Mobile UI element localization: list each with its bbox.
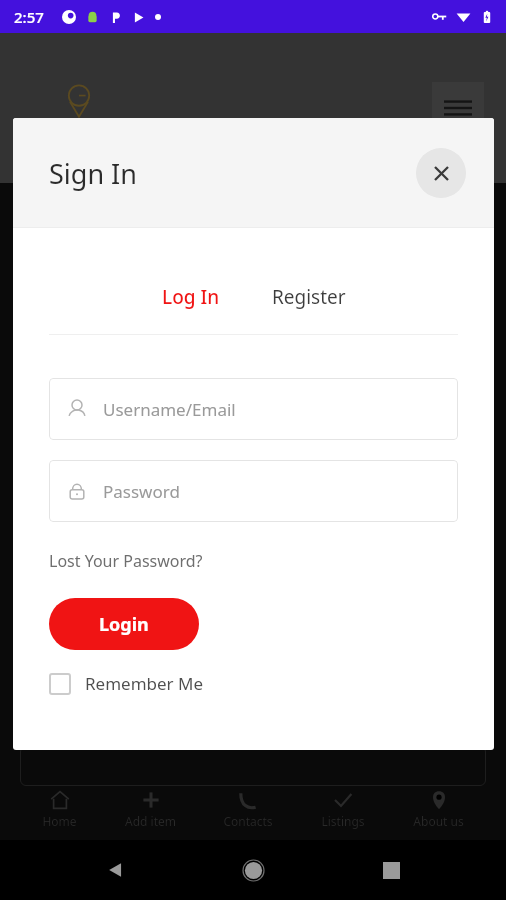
staticText: Lost Your Password? bbox=[49, 550, 203, 572]
staticText: Password bbox=[103, 480, 180, 503]
button[interactable]: Register bbox=[264, 280, 354, 314]
button[interactable]: Home bbox=[36, 786, 83, 833]
button[interactable]: Home bbox=[231, 848, 275, 892]
staticText: Register bbox=[272, 284, 346, 310]
button[interactable]: Add item bbox=[119, 786, 182, 833]
staticText: Remember Me bbox=[85, 672, 204, 695]
staticText: Log In bbox=[162, 284, 220, 310]
staticText: Listings bbox=[321, 813, 365, 829]
staticText: Login bbox=[99, 612, 149, 637]
staticText: Contacts bbox=[223, 813, 273, 829]
button[interactable]: Username/Email bbox=[49, 378, 458, 440]
button[interactable]: Log In bbox=[154, 280, 228, 314]
button[interactable]: Recent apps bbox=[369, 848, 413, 892]
button[interactable]: Lost Your Password? bbox=[49, 548, 203, 574]
button[interactable]: Contacts bbox=[217, 786, 279, 833]
button[interactable]: Remember Me bbox=[49, 672, 204, 695]
button[interactable]: Back bbox=[94, 848, 138, 892]
button[interactable]: Login bbox=[49, 598, 199, 650]
button[interactable]: Password bbox=[49, 460, 458, 522]
staticText: 2:57 bbox=[14, 7, 44, 27]
staticText: Sign In bbox=[49, 155, 137, 192]
staticText: Home bbox=[42, 813, 77, 829]
button[interactable]: Menu bbox=[432, 82, 484, 134]
staticText: About us bbox=[413, 813, 464, 829]
staticText: Add item bbox=[125, 813, 176, 829]
staticText: Username/Email bbox=[103, 398, 236, 421]
button[interactable]: Listings bbox=[315, 786, 371, 833]
button[interactable]: About us bbox=[407, 786, 470, 833]
button[interactable]: Close bbox=[416, 148, 466, 198]
